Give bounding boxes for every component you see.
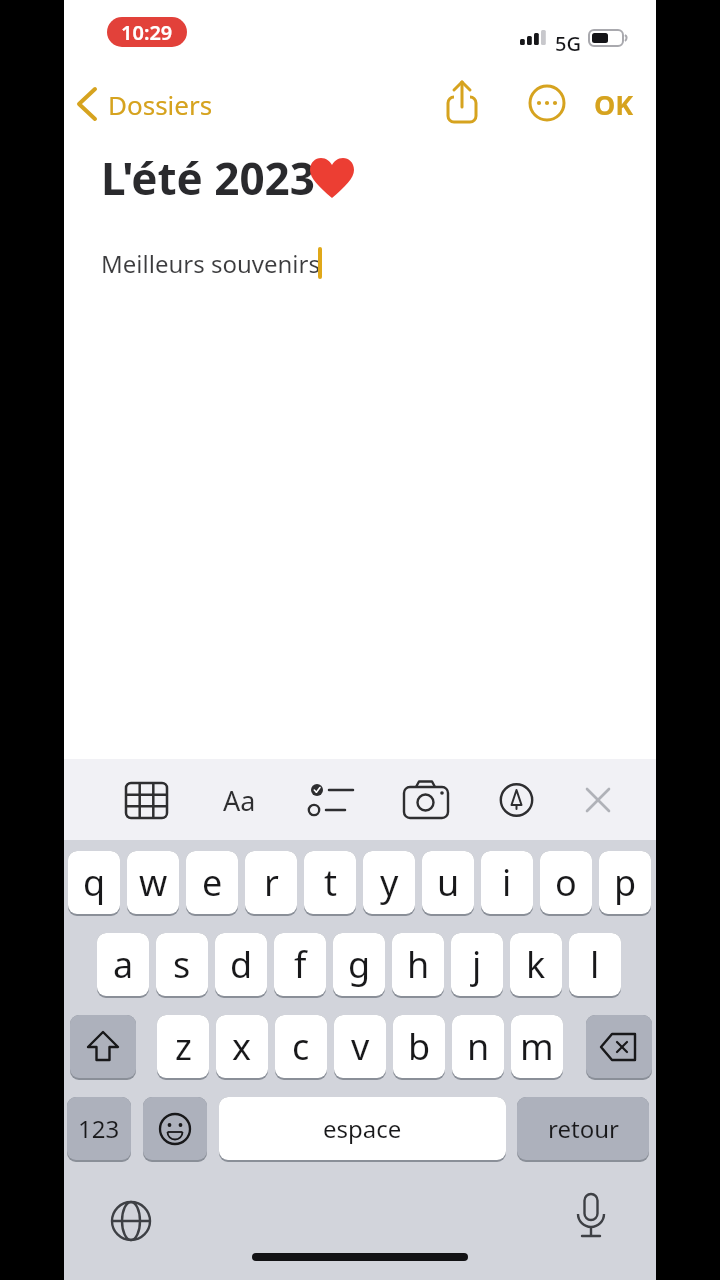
staticText: z bbox=[175, 1022, 192, 1071]
button[interactable]: v bbox=[334, 1015, 386, 1078]
staticText: d bbox=[230, 940, 253, 989]
staticText: Meilleurs souvenirs bbox=[101, 247, 320, 280]
button[interactable]: k bbox=[510, 933, 562, 996]
staticText: v bbox=[351, 1022, 370, 1071]
staticText: j bbox=[472, 940, 482, 989]
button[interactable]: i bbox=[481, 851, 533, 914]
button[interactable]: q bbox=[68, 851, 120, 914]
staticText: s bbox=[173, 940, 191, 989]
button[interactable]: g bbox=[333, 933, 385, 996]
button[interactable]: Dossiers bbox=[70, 82, 218, 126]
button[interactable]: a bbox=[97, 933, 149, 996]
staticText: 5G bbox=[555, 30, 581, 57]
staticText: k bbox=[526, 940, 546, 989]
button[interactable]: u bbox=[422, 851, 474, 914]
staticText: OK bbox=[594, 86, 634, 123]
staticText: w bbox=[139, 858, 168, 907]
button[interactable]: n bbox=[452, 1015, 504, 1078]
staticText: e bbox=[202, 858, 223, 907]
button[interactable] bbox=[143, 1097, 207, 1160]
staticText: l bbox=[590, 940, 600, 989]
button[interactable]: l bbox=[569, 933, 621, 996]
staticText: b bbox=[408, 1022, 431, 1071]
staticText: Aa bbox=[223, 782, 256, 819]
staticText: q bbox=[83, 858, 106, 907]
staticText: h bbox=[407, 940, 430, 989]
button[interactable]: y bbox=[363, 851, 415, 914]
button[interactable]: e bbox=[186, 851, 238, 914]
button[interactable]: p bbox=[599, 851, 651, 914]
button[interactable]: Aa bbox=[212, 780, 266, 820]
button[interactable]: 10:29 bbox=[107, 17, 187, 47]
staticText: a bbox=[113, 940, 134, 989]
button[interactable] bbox=[524, 81, 570, 127]
staticText: p bbox=[614, 858, 637, 907]
staticText: retour bbox=[548, 1112, 619, 1145]
button[interactable]: j bbox=[451, 933, 503, 996]
staticText: x bbox=[232, 1022, 252, 1071]
staticText: u bbox=[437, 858, 460, 907]
staticText: m bbox=[520, 1022, 554, 1071]
staticText: L'été 2023 bbox=[101, 148, 315, 208]
button[interactable]: b bbox=[393, 1015, 445, 1078]
button[interactable]: s bbox=[156, 933, 208, 996]
button[interactable] bbox=[70, 1015, 136, 1078]
button[interactable] bbox=[109, 1199, 153, 1243]
button[interactable]: f bbox=[274, 933, 326, 996]
staticText: i bbox=[502, 858, 512, 907]
button[interactable] bbox=[122, 779, 171, 822]
staticText: f bbox=[294, 940, 307, 989]
staticText: t bbox=[324, 858, 337, 907]
button[interactable]: espace bbox=[219, 1097, 506, 1160]
staticText: r bbox=[264, 858, 279, 907]
button[interactable]: c bbox=[275, 1015, 327, 1078]
button[interactable]: r bbox=[245, 851, 297, 914]
button[interactable]: o bbox=[540, 851, 592, 914]
staticText: o bbox=[555, 858, 577, 907]
staticText: espace bbox=[323, 1112, 402, 1145]
button[interactable]: x bbox=[216, 1015, 268, 1078]
button[interactable] bbox=[402, 779, 452, 821]
button[interactable] bbox=[584, 786, 612, 814]
button[interactable]: z bbox=[157, 1015, 209, 1078]
button[interactable] bbox=[305, 777, 357, 823]
button[interactable] bbox=[571, 1192, 611, 1244]
staticText: g bbox=[348, 940, 371, 989]
button[interactable]: retour bbox=[517, 1097, 649, 1160]
button[interactable]: d bbox=[215, 933, 267, 996]
button[interactable]: t bbox=[304, 851, 356, 914]
staticText: c bbox=[292, 1022, 310, 1071]
staticText: n bbox=[467, 1022, 490, 1071]
staticText: 10:29 bbox=[121, 19, 173, 46]
button[interactable] bbox=[438, 78, 486, 130]
button[interactable]: w bbox=[127, 851, 179, 914]
button[interactable]: h bbox=[392, 933, 444, 996]
button[interactable]: 123 bbox=[67, 1097, 131, 1160]
button[interactable] bbox=[498, 781, 536, 819]
button[interactable]: OK bbox=[588, 84, 640, 124]
staticText: 123 bbox=[78, 1112, 120, 1145]
button[interactable]: m bbox=[511, 1015, 563, 1078]
staticText: y bbox=[380, 858, 399, 907]
staticText: Dossiers bbox=[108, 87, 213, 122]
button[interactable] bbox=[586, 1015, 652, 1078]
